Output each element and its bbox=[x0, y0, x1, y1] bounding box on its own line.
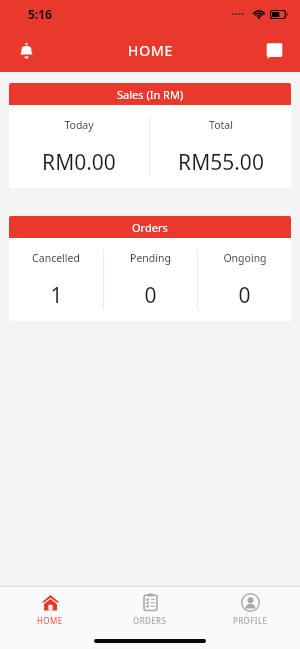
staticText: HOME bbox=[128, 41, 173, 60]
button[interactable]: Notifications bbox=[8, 32, 44, 68]
button[interactable]: Messages bbox=[256, 32, 292, 68]
button[interactable]: Sales (In RM) bbox=[9, 83, 291, 188]
staticText: PROFILE bbox=[233, 615, 268, 626]
staticText: Today bbox=[64, 118, 94, 132]
button[interactable]: ORDERS bbox=[100, 587, 200, 632]
staticText: 5:16 bbox=[28, 6, 52, 22]
staticText: ORDERS bbox=[133, 615, 167, 626]
staticText: Sales (In RM) bbox=[117, 87, 184, 102]
button[interactable]: HOME bbox=[0, 587, 100, 632]
button[interactable]: PROFILE bbox=[200, 587, 300, 632]
staticText: Total bbox=[209, 118, 233, 132]
staticText: 1 bbox=[50, 281, 63, 310]
staticText: Ongoing bbox=[223, 251, 267, 265]
staticText: RM55.00 bbox=[178, 148, 264, 177]
staticText: RM0.00 bbox=[42, 148, 116, 177]
staticText: HOME bbox=[37, 615, 63, 626]
staticText: Cancelled bbox=[32, 251, 80, 265]
button[interactable]: Orders bbox=[9, 216, 291, 321]
staticText: 0 bbox=[238, 281, 251, 310]
staticText: Orders bbox=[132, 220, 168, 235]
staticText: 0 bbox=[144, 281, 157, 310]
staticText: Pending bbox=[130, 251, 171, 265]
